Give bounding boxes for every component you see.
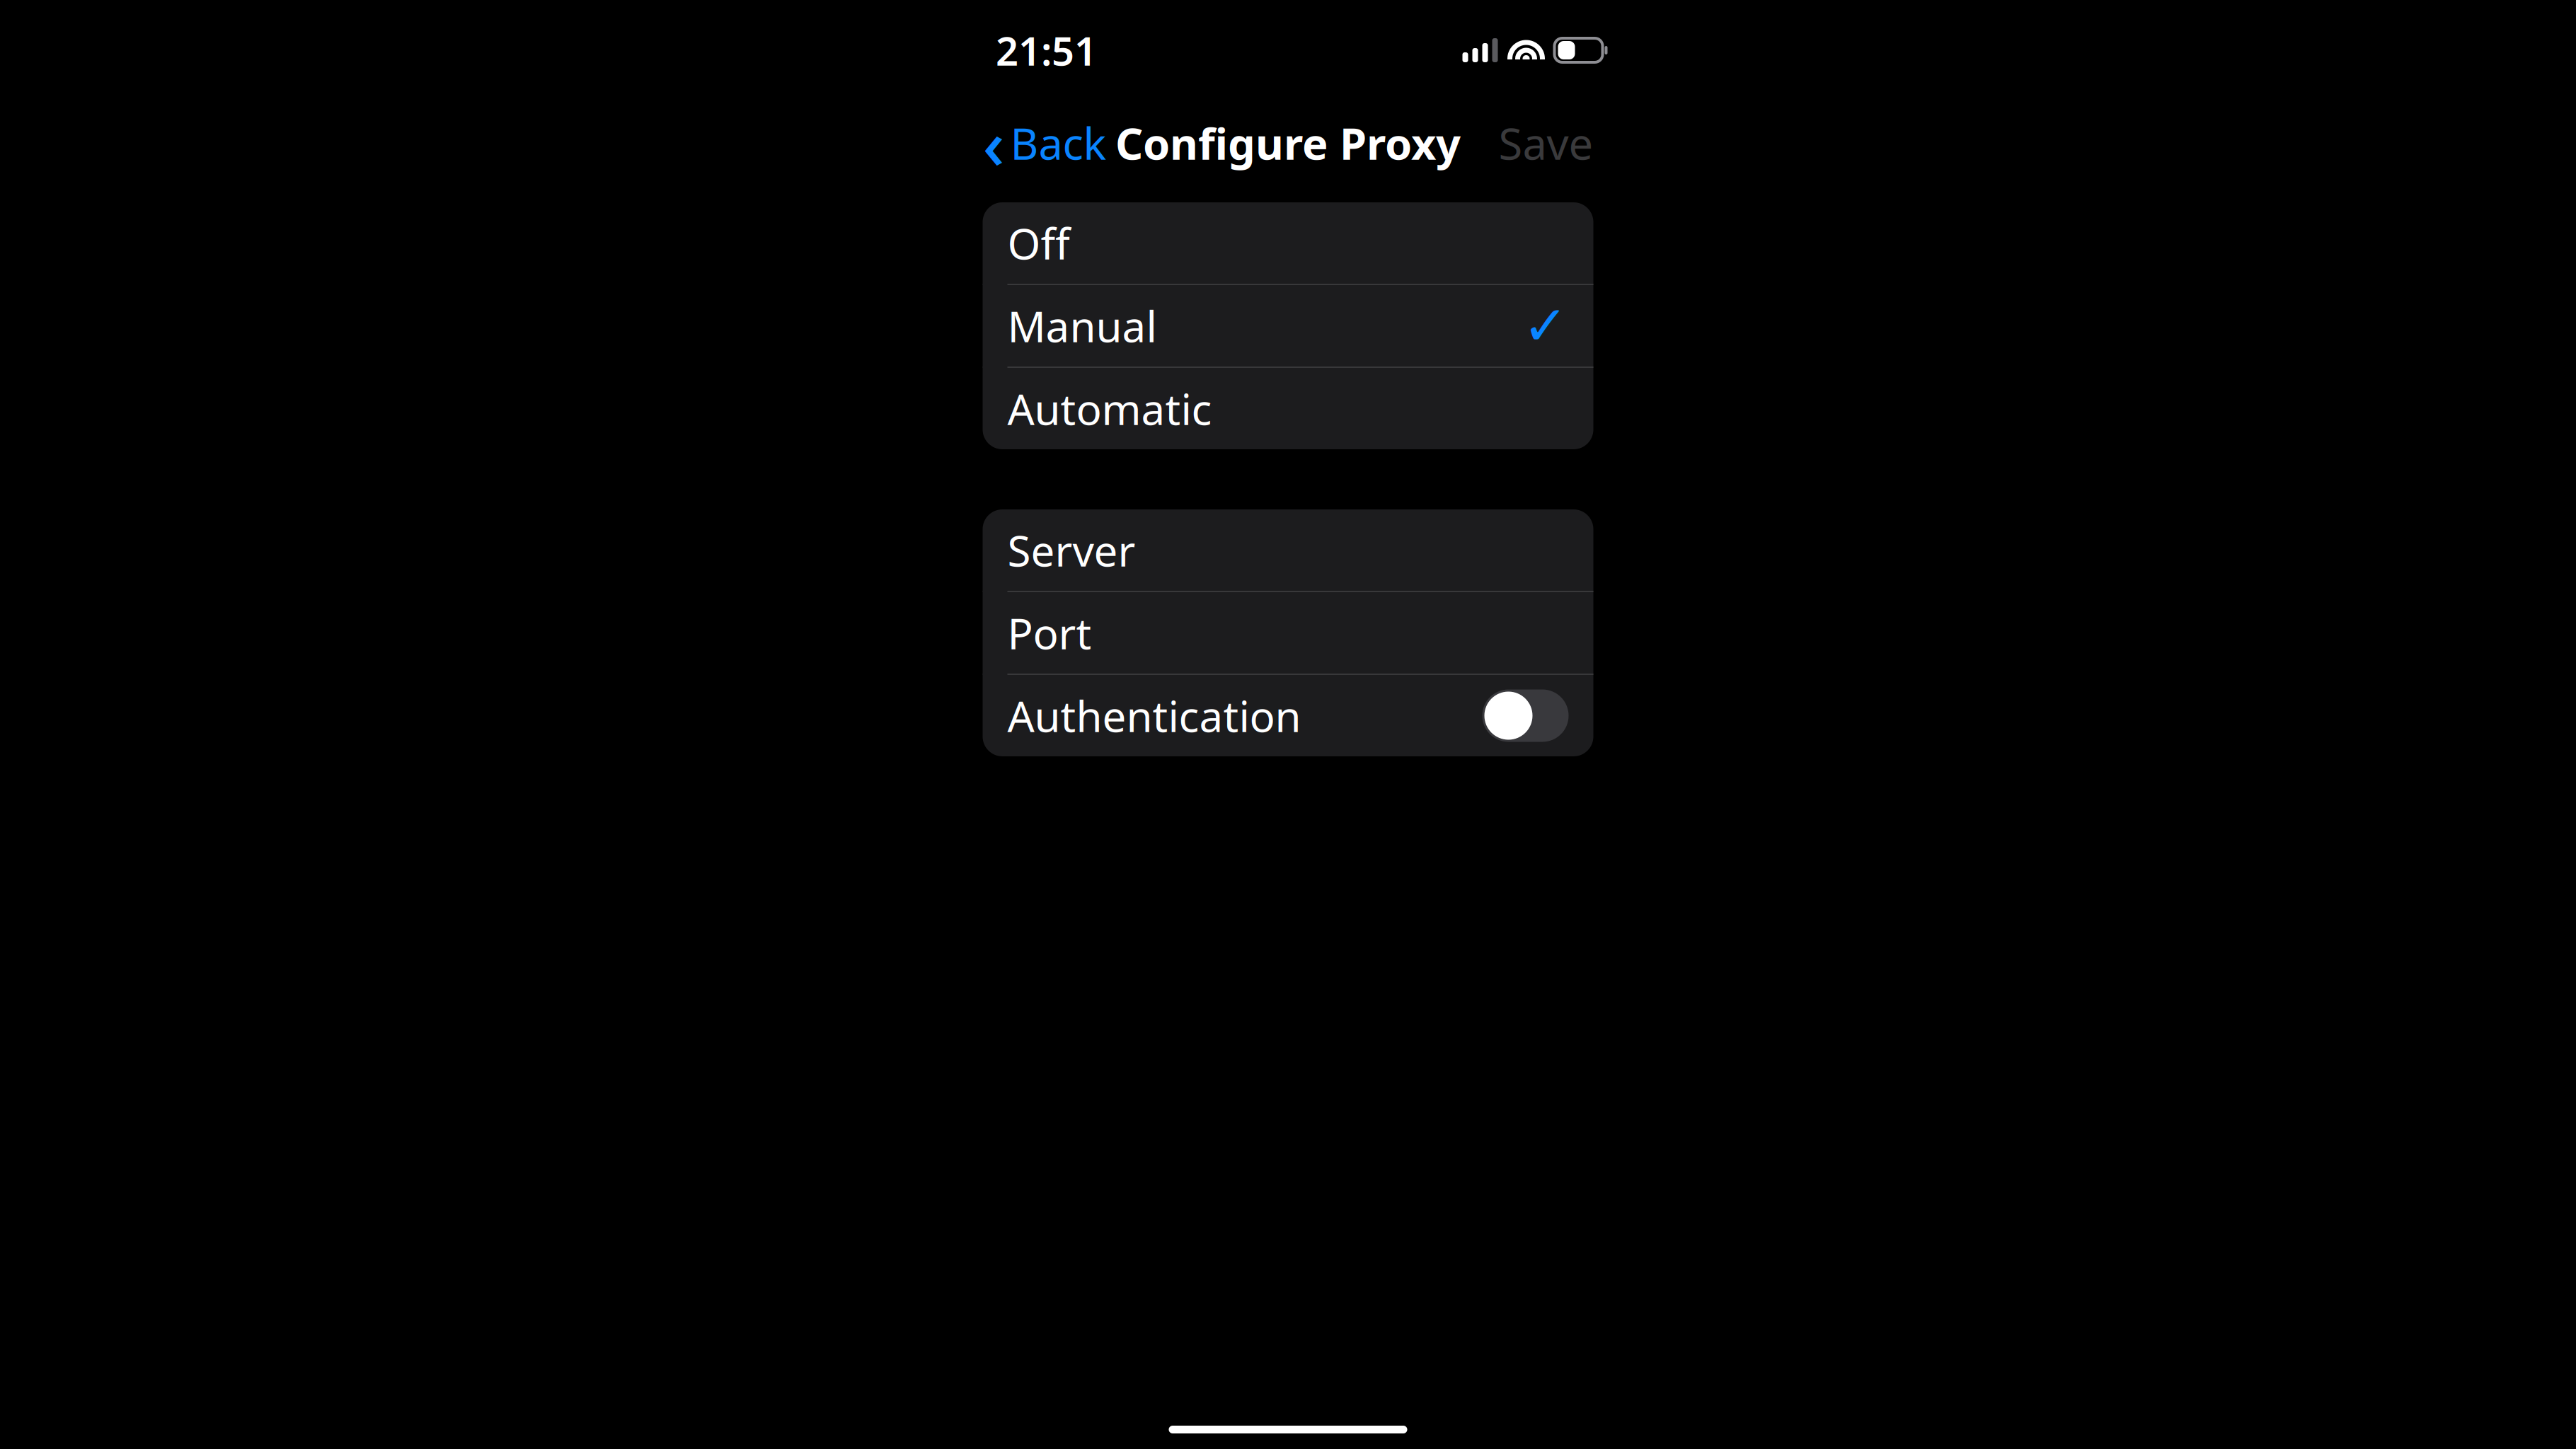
button[interactable]: Authentication — [983, 675, 1593, 756]
button[interactable]: Save — [1499, 108, 1593, 177]
button[interactable]: Automatic — [983, 368, 1593, 449]
button[interactable]: Server — [983, 509, 1593, 591]
staticText: ✓ — [1523, 295, 1569, 357]
button[interactable]: Port — [983, 592, 1593, 674]
staticText: ‹ — [983, 98, 1005, 188]
staticText: Save — [1499, 114, 1593, 172]
staticText: 21:51 — [996, 24, 1097, 77]
staticText: Server — [1007, 522, 1135, 578]
button[interactable]: Off — [983, 202, 1593, 284]
button[interactable]: Manual — [983, 285, 1593, 366]
button[interactable]: ‹ — [983, 92, 1106, 194]
staticText: Port — [1007, 605, 1092, 661]
staticText: Back — [1010, 114, 1106, 172]
staticText: Automatic — [1007, 380, 1212, 437]
staticText: Off — [1007, 215, 1070, 271]
staticText: Configure Proxy — [1115, 114, 1461, 172]
staticText: Authentication — [1007, 687, 1301, 744]
staticText: Manual — [1007, 298, 1157, 354]
